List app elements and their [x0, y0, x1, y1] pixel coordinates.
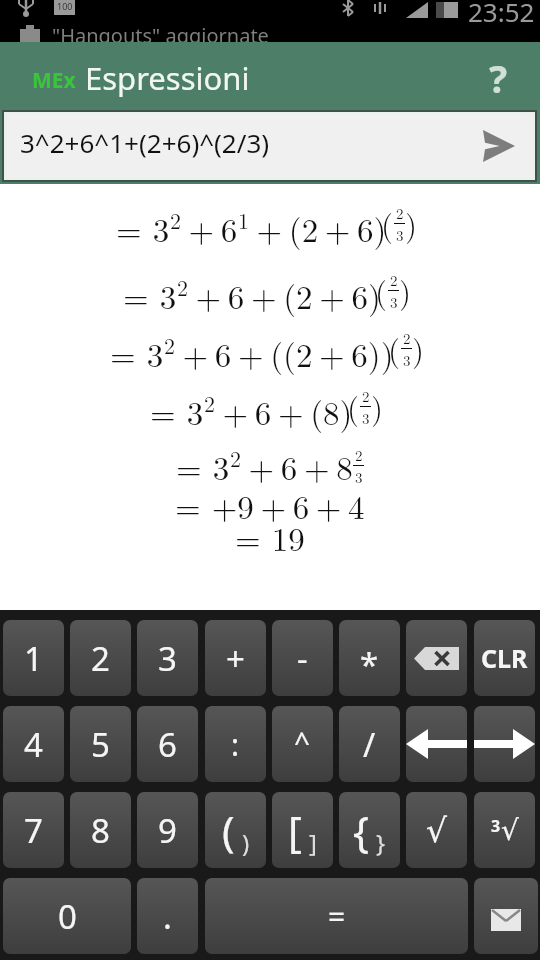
button[interactable]: + — [205, 620, 266, 696]
button[interactable]: √ — [406, 792, 467, 868]
staticText: 3^2+6^1+(2+6)^(2/3) — [20, 125, 270, 160]
button[interactable]: ^ — [272, 706, 333, 782]
button[interactable]: 3 — [137, 620, 198, 696]
staticText: ( — [381, 201, 394, 245]
staticText: ? — [489, 52, 508, 102]
staticText: } — [376, 826, 386, 859]
staticText: 1 — [24, 636, 43, 681]
staticText: √ — [426, 811, 448, 849]
staticText: 3 — [491, 815, 501, 837]
button[interactable]: { — [339, 792, 400, 868]
staticText: 3 — [390, 291, 398, 312]
staticText: + 6 + ((2 + 6)) — [176, 330, 394, 377]
button[interactable]: = — [205, 878, 468, 954]
staticText: = +9 + 6 + 4 — [175, 482, 365, 529]
staticText: 3 — [158, 636, 177, 681]
staticText: ( — [222, 802, 235, 859]
button[interactable] — [406, 620, 467, 696]
staticText: ( — [347, 384, 360, 428]
staticText: = — [328, 896, 346, 937]
staticText: ) — [399, 268, 412, 312]
button[interactable]: 2 — [70, 620, 131, 696]
staticText: ) — [405, 201, 418, 245]
staticText: : — [231, 724, 240, 765]
button[interactable]: [ — [272, 792, 333, 868]
staticText: - — [297, 636, 308, 681]
staticText: 9 — [158, 808, 177, 853]
staticText: 2 — [390, 269, 398, 290]
staticText: + (2 + 6) — [250, 205, 387, 252]
staticText: 100 — [57, 0, 73, 12]
staticText: √ — [501, 814, 519, 847]
button[interactable]: 0 — [3, 878, 131, 954]
button[interactable]: ? — [478, 52, 518, 102]
staticText: "Hangouts" aggiornate — [52, 22, 269, 42]
staticText: 2 — [403, 327, 411, 348]
button[interactable]: 9 — [137, 792, 198, 868]
staticText: 2 — [204, 387, 216, 418]
staticText: 1 — [238, 204, 250, 235]
staticText: 2 — [355, 444, 363, 465]
staticText: = 19 — [235, 514, 305, 561]
staticText: ( — [375, 268, 388, 312]
staticText: 23:52 — [468, 0, 535, 29]
staticText: ( — [388, 326, 401, 370]
staticText: ) — [371, 384, 384, 428]
button[interactable]: 7 — [3, 792, 64, 868]
button[interactable]: - — [272, 620, 333, 696]
staticText: = 3 — [176, 443, 230, 490]
staticText: CLR — [481, 641, 528, 675]
button[interactable] — [474, 706, 535, 782]
staticText: 3 — [396, 224, 404, 245]
staticText: * — [360, 642, 379, 687]
button[interactable]: / — [339, 706, 400, 782]
staticText: 2 — [362, 385, 370, 406]
button[interactable]: 3 — [474, 792, 535, 868]
staticText: 3 — [355, 466, 363, 487]
staticText: = 3 — [116, 205, 170, 252]
staticText: 5 — [91, 722, 110, 767]
button[interactable]: * — [339, 620, 400, 696]
button[interactable]: 4 — [3, 706, 64, 782]
staticText: = 3 — [123, 272, 177, 319]
staticText: . — [163, 894, 172, 939]
staticText: + — [226, 636, 245, 681]
button[interactable]: . — [137, 878, 198, 954]
staticText: / — [363, 722, 376, 767]
staticText: 2 — [91, 636, 110, 681]
staticText: 0 — [58, 894, 77, 939]
staticText: = 3 — [150, 388, 204, 435]
staticText: + 6 — [182, 205, 238, 252]
staticText: + 6 + (2 + 6) — [189, 272, 381, 319]
staticText: 2 — [164, 329, 176, 360]
button[interactable]: : — [205, 706, 266, 782]
staticText: = 3 — [110, 330, 164, 377]
staticText: 2 — [170, 204, 182, 235]
button[interactable]: 5 — [70, 706, 131, 782]
button[interactable]: ( — [205, 792, 266, 868]
staticText: 6 — [158, 722, 177, 767]
staticText: + 6 + (8) — [216, 388, 353, 435]
staticText: 2 — [230, 442, 242, 473]
staticText: 3 — [362, 407, 370, 428]
staticText: 4 — [24, 722, 43, 767]
button[interactable] — [474, 878, 538, 954]
staticText: ] — [309, 826, 317, 859]
button[interactable]: 8 — [70, 792, 131, 868]
button[interactable]: CLR — [474, 620, 535, 696]
button[interactable] — [406, 706, 467, 782]
button[interactable]: 6 — [137, 706, 198, 782]
staticText: ) — [242, 826, 250, 859]
staticText: + 6 + 8 — [242, 443, 353, 490]
staticText: 3 — [403, 349, 411, 370]
staticText: 2 — [396, 202, 404, 223]
staticText: { — [353, 802, 369, 859]
staticText: 2 — [177, 271, 189, 302]
staticText: 7 — [24, 808, 43, 853]
staticText: [ — [288, 802, 302, 859]
staticText: ) — [412, 326, 425, 370]
button[interactable]: 1 — [3, 620, 64, 696]
staticText: 8 — [91, 808, 110, 853]
staticText: ^ — [294, 722, 311, 760]
staticText: Espressioni — [85, 57, 250, 99]
